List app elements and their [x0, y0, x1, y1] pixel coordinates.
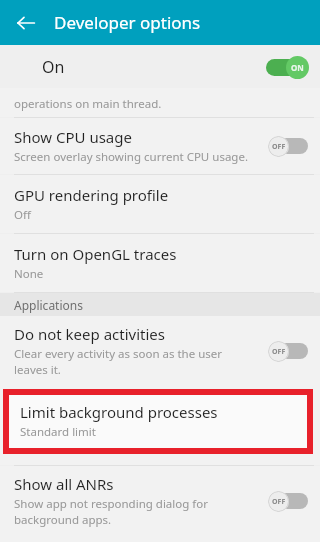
- staticText: Off: [14, 207, 31, 223]
- button[interactable]: Show all ANRs: [0, 466, 320, 536]
- staticText: OFF: [272, 347, 286, 357]
- button[interactable]: On: [0, 45, 320, 88]
- staticText: None: [14, 266, 44, 282]
- staticText: background apps.: [14, 512, 112, 528]
- staticText: ON: [291, 62, 304, 73]
- button[interactable]: Limit background processes: [9, 395, 307, 448]
- button[interactable]: Show CPU usage: [0, 118, 320, 174]
- staticText: Limit background processes: [20, 402, 218, 422]
- staticText: Show app not responding dialog for: [14, 496, 208, 512]
- staticText: On: [42, 56, 65, 78]
- staticText: GPU rendering profile: [14, 185, 169, 205]
- staticText: Applications: [14, 297, 83, 313]
- staticText: OFF: [272, 142, 286, 152]
- staticText: operations on main thread.: [14, 96, 162, 112]
- button[interactable]: Navigate up: [6, 3, 46, 43]
- staticText: Screen overlay showing current CPU usage…: [14, 149, 248, 165]
- staticText: Standard limit: [20, 424, 96, 440]
- button[interactable]: Do not keep activities off: [268, 339, 312, 363]
- button[interactable]: Do not keep activities: [0, 316, 320, 386]
- staticText: OFF: [272, 497, 286, 507]
- staticText: Do not keep activities: [14, 324, 165, 344]
- button[interactable]: Developer options on: [264, 55, 310, 79]
- staticText: Clear every activity as soon as the user: [14, 346, 223, 362]
- button[interactable]: GPU rendering profile: [0, 175, 320, 233]
- staticText: leaves it.: [14, 362, 61, 378]
- staticText: Developer options: [54, 11, 201, 34]
- button[interactable]: Turn on OpenGL traces: [0, 234, 320, 292]
- staticText: Show CPU usage: [14, 127, 132, 147]
- staticText: Turn on OpenGL traces: [14, 244, 177, 264]
- button[interactable]: Show all ANRs off: [268, 489, 312, 513]
- staticText: Show all ANRs: [14, 474, 114, 494]
- button[interactable]: Show CPU usage off: [268, 134, 312, 158]
